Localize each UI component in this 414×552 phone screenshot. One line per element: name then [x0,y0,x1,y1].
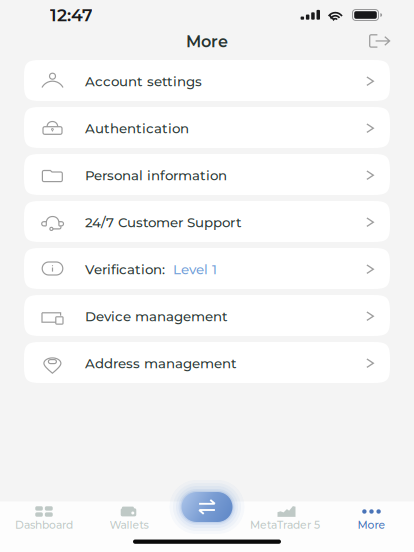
staticText: 12:47 [50,4,93,25]
staticText: Authentication [85,120,189,137]
staticText: Personal information [85,167,227,184]
button[interactable]: Address management [24,342,390,383]
button[interactable]: Account settings [24,60,390,101]
staticText: Verification: [85,261,165,278]
staticText: More [357,518,385,531]
staticText: Wallets [109,518,148,531]
button[interactable]: Authentication [24,107,390,148]
button[interactable]: Wallets [85,501,173,531]
button[interactable]: Device management [24,295,390,336]
staticText: Dashboard [15,518,73,531]
staticText: Level 1 [165,261,217,278]
button[interactable]: MetaTrader 5 [241,501,329,531]
button[interactable]: Verification: [24,248,390,289]
staticText: 24/7 Customer Support [85,214,242,231]
staticText: Account settings [85,73,202,90]
button[interactable]: Log out [369,34,414,48]
staticText: Device management [85,308,228,325]
button[interactable]: More [327,501,414,531]
button[interactable]: Personal information [24,154,390,195]
staticText: MetaTrader 5 [250,518,320,531]
button[interactable]: 24/7 Customer Support [24,201,390,242]
staticText: Address management [85,355,237,372]
button[interactable]: Dashboard [0,501,88,531]
staticText: More [186,32,228,51]
